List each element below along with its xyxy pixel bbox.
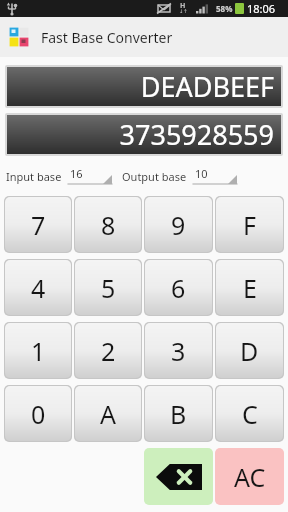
button[interactable]: B — [145, 386, 212, 441]
button[interactable]: DEADBEEF — [7, 67, 281, 106]
staticText: AC — [234, 460, 266, 494]
staticText: 9 — [171, 208, 186, 242]
staticText: Fast Base Converter — [41, 28, 173, 47]
staticText: DEADBEEF — [140, 68, 274, 105]
button[interactable]: 16 — [68, 165, 112, 187]
button[interactable]: 2 — [75, 323, 141, 378]
staticText: F — [243, 208, 256, 242]
button[interactable]: Backspace — [144, 448, 213, 505]
button[interactable]: 5 — [75, 260, 141, 315]
button[interactable]: C — [216, 386, 283, 441]
staticText: 3735928559 — [119, 116, 274, 153]
button[interactable]: 3735928559 — [7, 115, 281, 154]
button[interactable]: 3 — [145, 323, 212, 378]
button[interactable]: A — [75, 386, 141, 441]
staticText: 1 — [31, 334, 46, 368]
staticText: 58% — [216, 3, 233, 14]
button[interactable]: E — [216, 260, 283, 315]
staticText: H — [180, 1, 186, 11]
button[interactable]: F — [216, 197, 283, 252]
staticText: 2 — [101, 334, 116, 368]
button[interactable]: 8 — [75, 197, 141, 252]
button[interactable]: 6 — [145, 260, 212, 315]
button[interactable]: 1 — [5, 323, 71, 378]
button[interactable]: 4 — [5, 260, 71, 315]
staticText: Output base — [122, 169, 187, 184]
button[interactable]: 10 — [193, 165, 237, 187]
staticText: D — [240, 334, 259, 368]
staticText: E — [243, 271, 257, 305]
staticText: A — [100, 397, 116, 431]
staticText: B — [170, 397, 187, 431]
staticText: Input base — [6, 169, 62, 184]
staticText: 7 — [31, 208, 46, 242]
button[interactable]: 9 — [145, 197, 212, 252]
staticText: ↓↑ — [179, 8, 188, 14]
staticText: 18:06 — [247, 1, 276, 16]
button[interactable]: 7 — [5, 197, 71, 252]
staticText: 8 — [101, 208, 116, 242]
button[interactable]: D — [216, 323, 283, 378]
staticText: 6 — [171, 271, 186, 305]
button[interactable]: AC — [215, 448, 284, 505]
button[interactable]: 0 — [5, 386, 71, 441]
staticText: 4 — [31, 271, 46, 305]
staticText: 3 — [171, 334, 186, 368]
staticText: 10 — [195, 166, 208, 181]
staticText: C — [242, 397, 258, 431]
staticText: 5 — [101, 271, 116, 305]
staticText: 0 — [31, 397, 46, 431]
staticText: 16 — [70, 166, 83, 181]
